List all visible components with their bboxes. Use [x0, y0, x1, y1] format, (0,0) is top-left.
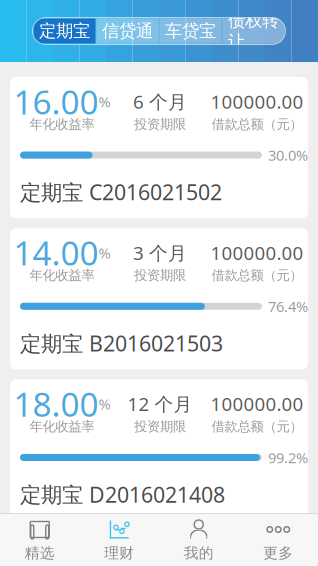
staticText: 车贷宝 — [165, 20, 216, 42]
staticText: 14.00 — [13, 231, 98, 275]
button[interactable]: 15.00 — [10, 531, 308, 566]
staticText: 30.0% — [268, 145, 308, 165]
staticText: 借款总额（元） — [211, 418, 302, 435]
staticText: 定期宝 D2016021408 — [20, 480, 225, 508]
staticText: 定期宝 B2016021503 — [20, 329, 223, 357]
staticText: % — [98, 545, 110, 565]
button[interactable]: 14.00 — [10, 228, 308, 369]
button[interactable]: 车贷宝 — [159, 18, 221, 43]
button[interactable]: 信贷通 — [96, 18, 158, 43]
staticText: 年化收益率 — [29, 116, 94, 132]
staticText: % — [98, 92, 110, 111]
staticText: 100000.00 — [210, 543, 303, 566]
staticText: 100000.00 — [210, 240, 303, 265]
button[interactable]: 16.00 — [10, 77, 308, 218]
staticText: 12 个月 — [127, 391, 192, 416]
staticText: 定期宝 C2016021502 — [20, 178, 222, 206]
staticText: 99.2% — [268, 448, 308, 467]
staticText: % — [98, 394, 110, 414]
staticText: 100000.00 — [210, 89, 303, 114]
staticText: 我的 — [184, 544, 214, 562]
staticText: 100000.00 — [210, 391, 303, 416]
staticText: 15.00 — [13, 533, 98, 566]
staticText: 投资期限 — [134, 418, 186, 435]
staticText: 信贷通 — [102, 20, 153, 42]
button[interactable]: 精选 — [0, 513, 79, 566]
staticText: 18.00 — [13, 382, 98, 426]
staticText: 债权转让 — [228, 10, 279, 52]
staticText: 6 个月 — [133, 543, 187, 566]
staticText: 定期宝 — [39, 20, 90, 42]
staticText: 更多 — [263, 544, 293, 562]
staticText: 借款总额（元） — [211, 116, 302, 132]
staticText: % — [98, 243, 110, 262]
button[interactable]: 债权转让 — [222, 18, 284, 43]
staticText: 3 个月 — [133, 240, 187, 265]
staticText: 投资期限 — [134, 267, 186, 284]
button[interactable]: 理财 — [79, 513, 159, 566]
staticText: 年化收益率 — [29, 267, 94, 284]
staticText: 精选 — [25, 544, 55, 562]
button[interactable]: 定期宝 — [33, 18, 95, 43]
staticText: 借款总额（元） — [211, 267, 302, 284]
staticText: 投资期限 — [134, 116, 186, 132]
staticText: 16.00 — [13, 79, 98, 124]
staticText: 理财 — [104, 544, 134, 562]
button[interactable]: 18.00 — [10, 379, 308, 521]
staticText: 6 个月 — [133, 89, 187, 114]
button[interactable]: 我的 — [159, 513, 238, 566]
staticText: 年化收益率 — [29, 418, 94, 435]
staticText: 76.4% — [268, 297, 308, 316]
button[interactable]: 更多 — [238, 513, 318, 566]
